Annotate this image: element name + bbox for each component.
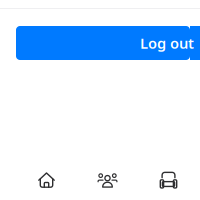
button[interactable]: Home — [16, 166, 77, 194]
button[interactable]: Log out — [16, 26, 200, 60]
staticText: Log out — [140, 33, 194, 53]
button[interactable]: Community — [77, 166, 138, 194]
button[interactable]: Lounge — [138, 166, 199, 194]
